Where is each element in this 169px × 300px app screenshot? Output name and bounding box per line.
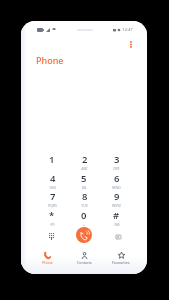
button[interactable]: 1 [38,153,66,172]
staticText: 12:47 [122,27,133,33]
staticText: 6 [114,172,120,185]
staticText: 0 [81,209,87,222]
staticText: 2 [82,153,88,166]
button[interactable]: # [102,209,130,228]
button[interactable]: 5 [70,172,98,191]
button[interactable]: Call [76,227,92,243]
button[interactable]: 4 [38,172,66,191]
staticText: ABC [81,166,88,171]
staticText: Contacts [77,260,92,265]
staticText: Favourites [112,260,130,265]
button[interactable]: 7 [38,190,66,209]
staticText: 5 [81,172,87,185]
staticText: Phone [42,260,53,265]
staticText: # [113,209,120,222]
button[interactable]: Backspace [109,228,126,245]
staticText: 9 [114,190,120,203]
button[interactable]: More options [123,37,138,52]
button[interactable]: Favourites [103,252,139,272]
button[interactable]: 6 [102,172,130,191]
staticText: MNO [112,185,121,190]
staticText: PQRS [48,203,57,208]
button[interactable]: 2 [70,153,98,172]
button[interactable]: 0 [70,209,98,228]
staticText: 8 [82,190,88,203]
button[interactable]: 9 [102,190,130,209]
button[interactable]: * [38,209,66,228]
staticText: (W) [114,222,120,227]
button[interactable]: Keypad [43,228,60,245]
staticText: TUV [81,203,88,208]
staticText: GHI [49,185,56,190]
button[interactable]: 8 [70,190,98,209]
button[interactable]: 3 [102,153,130,172]
staticText: 3 [114,153,120,166]
staticText: 4 [50,172,56,185]
staticText: WXYZ [112,203,121,208]
staticText: + [83,222,85,227]
staticText: (P) [50,222,55,227]
staticText: 1 [49,153,55,166]
staticText: * [49,209,55,222]
button[interactable]: Contacts [66,252,102,272]
staticText: Phone [36,54,64,66]
staticText: 7 [50,190,56,203]
staticText: JKL [82,185,87,190]
button[interactable]: Phone [29,252,65,272]
staticText: DEF [113,166,120,171]
